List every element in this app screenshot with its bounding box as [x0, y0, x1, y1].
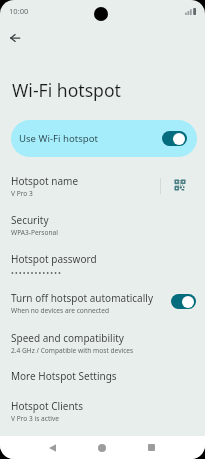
staticText: Hotspot Clients	[11, 399, 83, 413]
button[interactable]: Hotspot password	[0, 246, 205, 283]
button[interactable]: Turn off hotspot automatically	[0, 285, 205, 322]
button[interactable]: Use Wi-Fi hotspot	[11, 120, 197, 157]
button[interactable]: Share hotspot QR code	[167, 173, 193, 197]
staticText: Security	[11, 213, 49, 227]
staticText: More Hotspot Settings	[11, 369, 117, 383]
staticText: When no devices are connected	[11, 306, 110, 315]
staticText: Hotspot name	[11, 174, 79, 188]
button[interactable]: Speed and compatibility	[0, 325, 205, 362]
button[interactable]: Security	[0, 207, 205, 244]
button[interactable]: Back	[41, 436, 64, 459]
staticText: V Pro 3 is active	[11, 414, 60, 423]
staticText: Speed and compatibility	[11, 331, 124, 345]
button[interactable]: Recent apps	[140, 436, 163, 459]
staticText: Hotspot password	[11, 252, 97, 266]
staticText: Use Wi-Fi hotspot	[19, 132, 98, 145]
button[interactable]: Home	[90, 436, 113, 459]
staticText: Wi-Fi hotspot	[12, 78, 121, 102]
staticText: 10:00	[9, 6, 29, 16]
staticText: WPA3-Personal	[11, 228, 58, 237]
button[interactable]: Hotspot name	[0, 168, 205, 205]
staticText: V Pro 3	[11, 189, 33, 198]
staticText: Turn off hotspot automatically	[11, 291, 153, 305]
staticText: 2.4 GHz / Compatible with most devices	[11, 346, 134, 355]
button[interactable]: Hotspot Clients	[0, 393, 205, 430]
button[interactable]: Back	[2, 25, 27, 50]
button[interactable]: More Hotspot Settings	[0, 363, 205, 387]
